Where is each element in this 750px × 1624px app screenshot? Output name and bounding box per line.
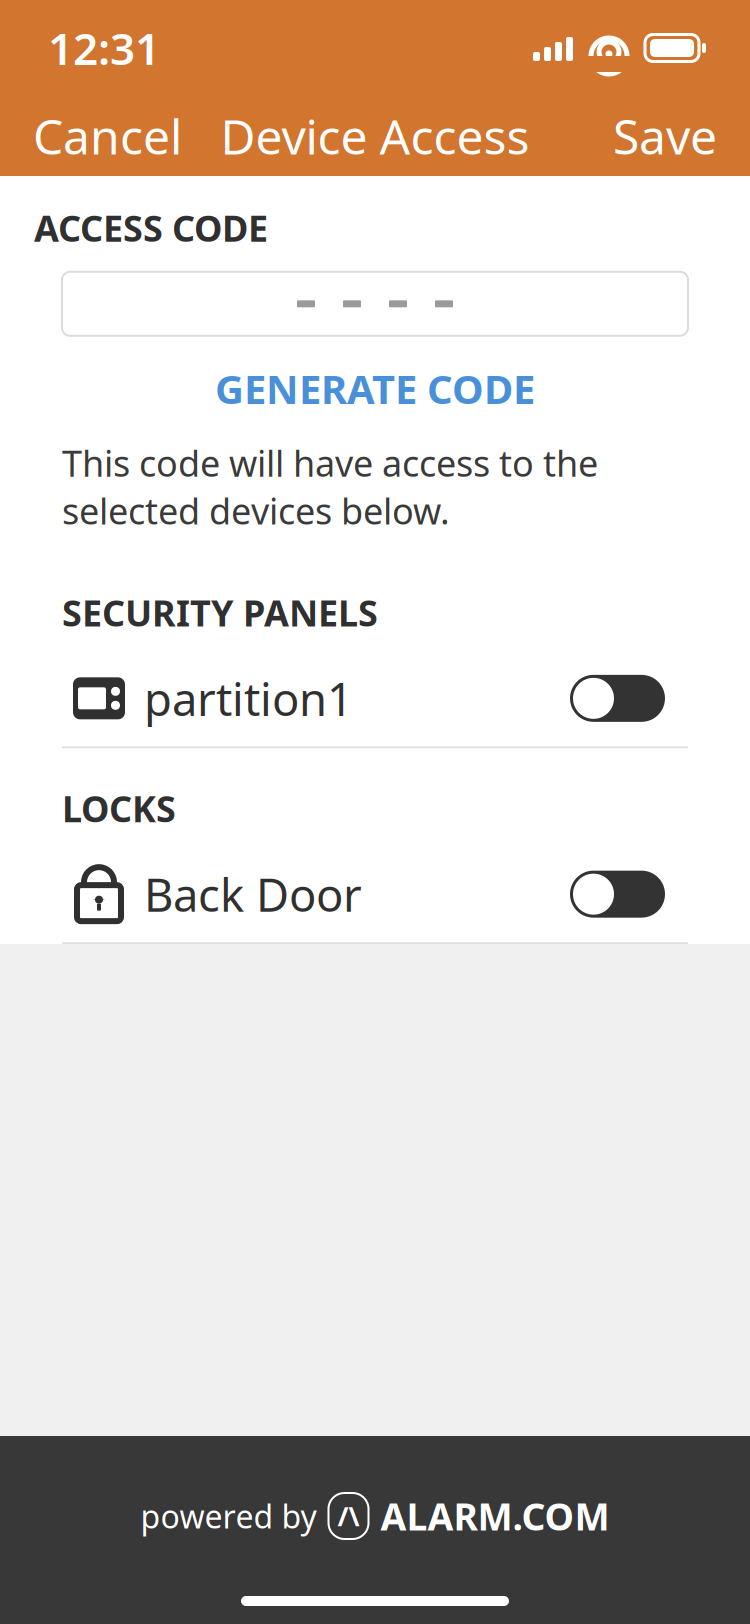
staticText: /\ [337, 1498, 359, 1534]
button[interactable]: Back Door [0, 846, 750, 942]
staticText: SECURITY PANELS [62, 588, 378, 636]
button[interactable]: GENERATE CODE [191, 354, 559, 423]
staticText: GENERATE CODE [215, 362, 535, 415]
staticText: ACCESS CODE [34, 204, 268, 252]
staticText: LOCKS [62, 784, 176, 832]
button[interactable]: partition1 [0, 650, 750, 746]
staticText: partition1 [144, 668, 353, 728]
staticText: ALARM.COM [380, 1491, 609, 1541]
staticText: Cancel [33, 104, 182, 168]
staticText: Save [613, 104, 717, 168]
staticText: 12:31 [48, 19, 160, 77]
button[interactable]: Cancel [3, 86, 212, 186]
button[interactable] [62, 272, 688, 336]
staticText: This code will have access to the select… [62, 439, 598, 534]
staticText: Device Access [220, 104, 529, 168]
staticText: powered by [140, 1495, 316, 1537]
staticText: Back Door [144, 864, 362, 924]
button[interactable]: Save [583, 86, 747, 186]
